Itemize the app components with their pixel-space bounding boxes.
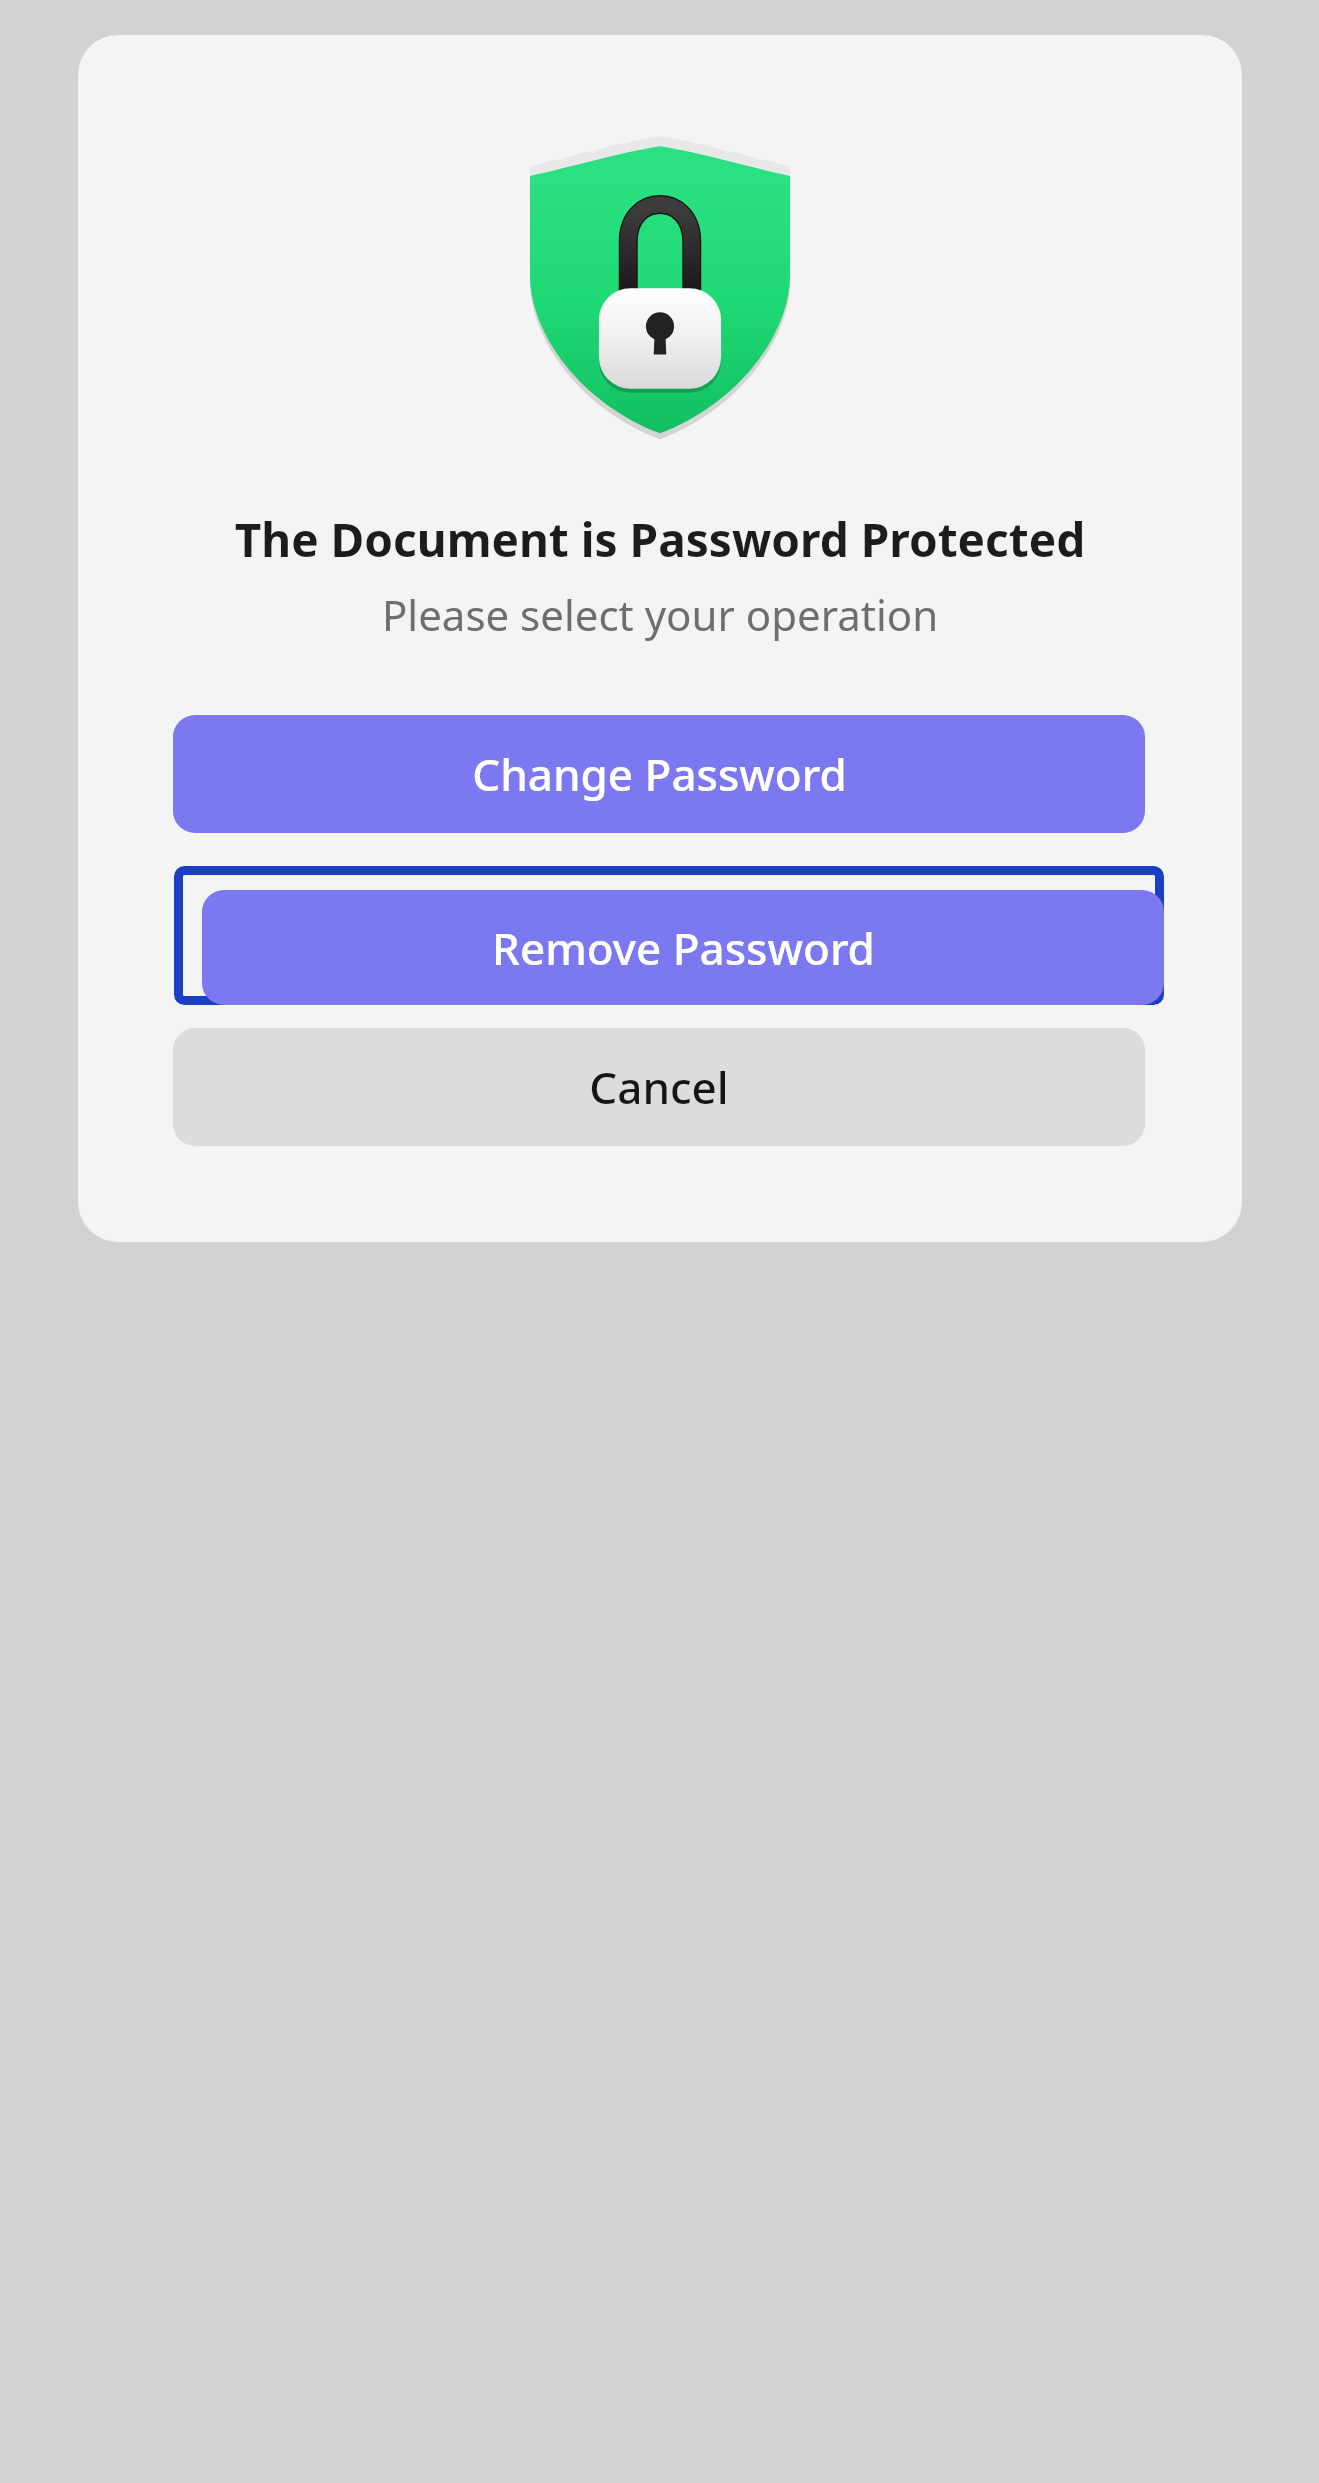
button[interactable]: Cancel: [173, 1028, 1145, 1146]
staticText: Remove Password: [492, 918, 875, 978]
staticText: Please select your operation: [78, 586, 1242, 643]
button[interactable]: Change Password: [173, 715, 1145, 833]
staticText: Change Password: [472, 744, 847, 804]
staticText: The Document is Password Protected: [78, 508, 1242, 571]
button[interactable]: Remove Password: [174, 866, 1164, 1005]
staticText: Cancel: [589, 1057, 729, 1117]
other: Password protected: [530, 105, 790, 435]
